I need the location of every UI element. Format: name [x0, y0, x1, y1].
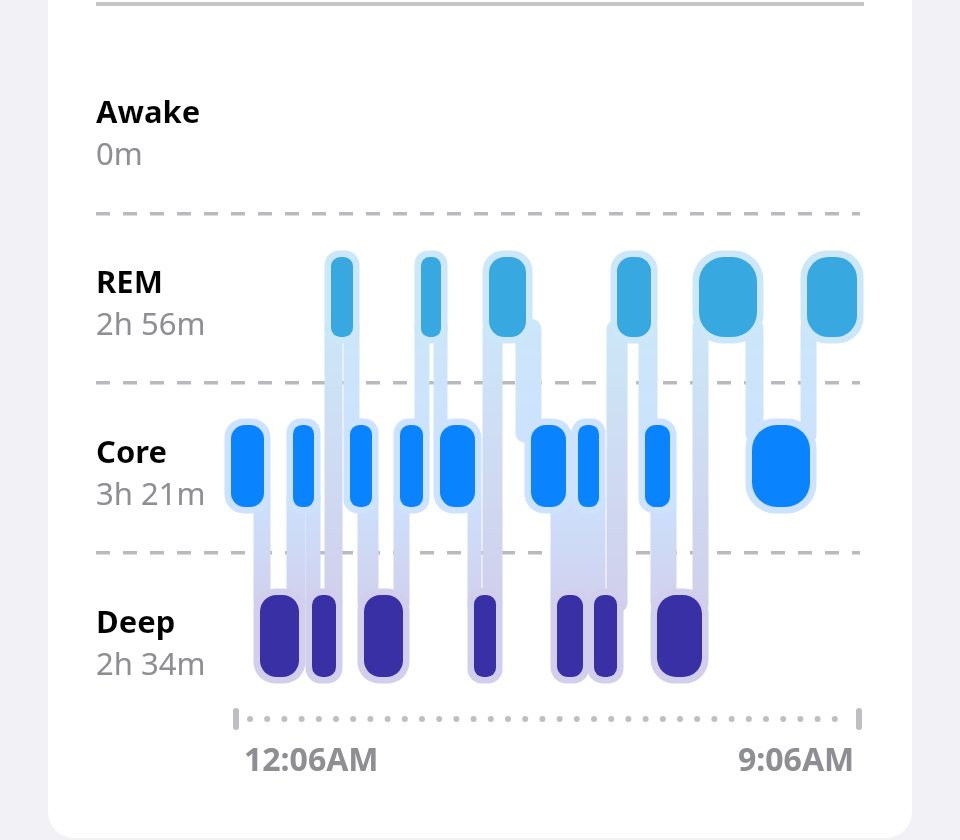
button[interactable]: Sleep stages chart: [0, 0, 960, 840]
